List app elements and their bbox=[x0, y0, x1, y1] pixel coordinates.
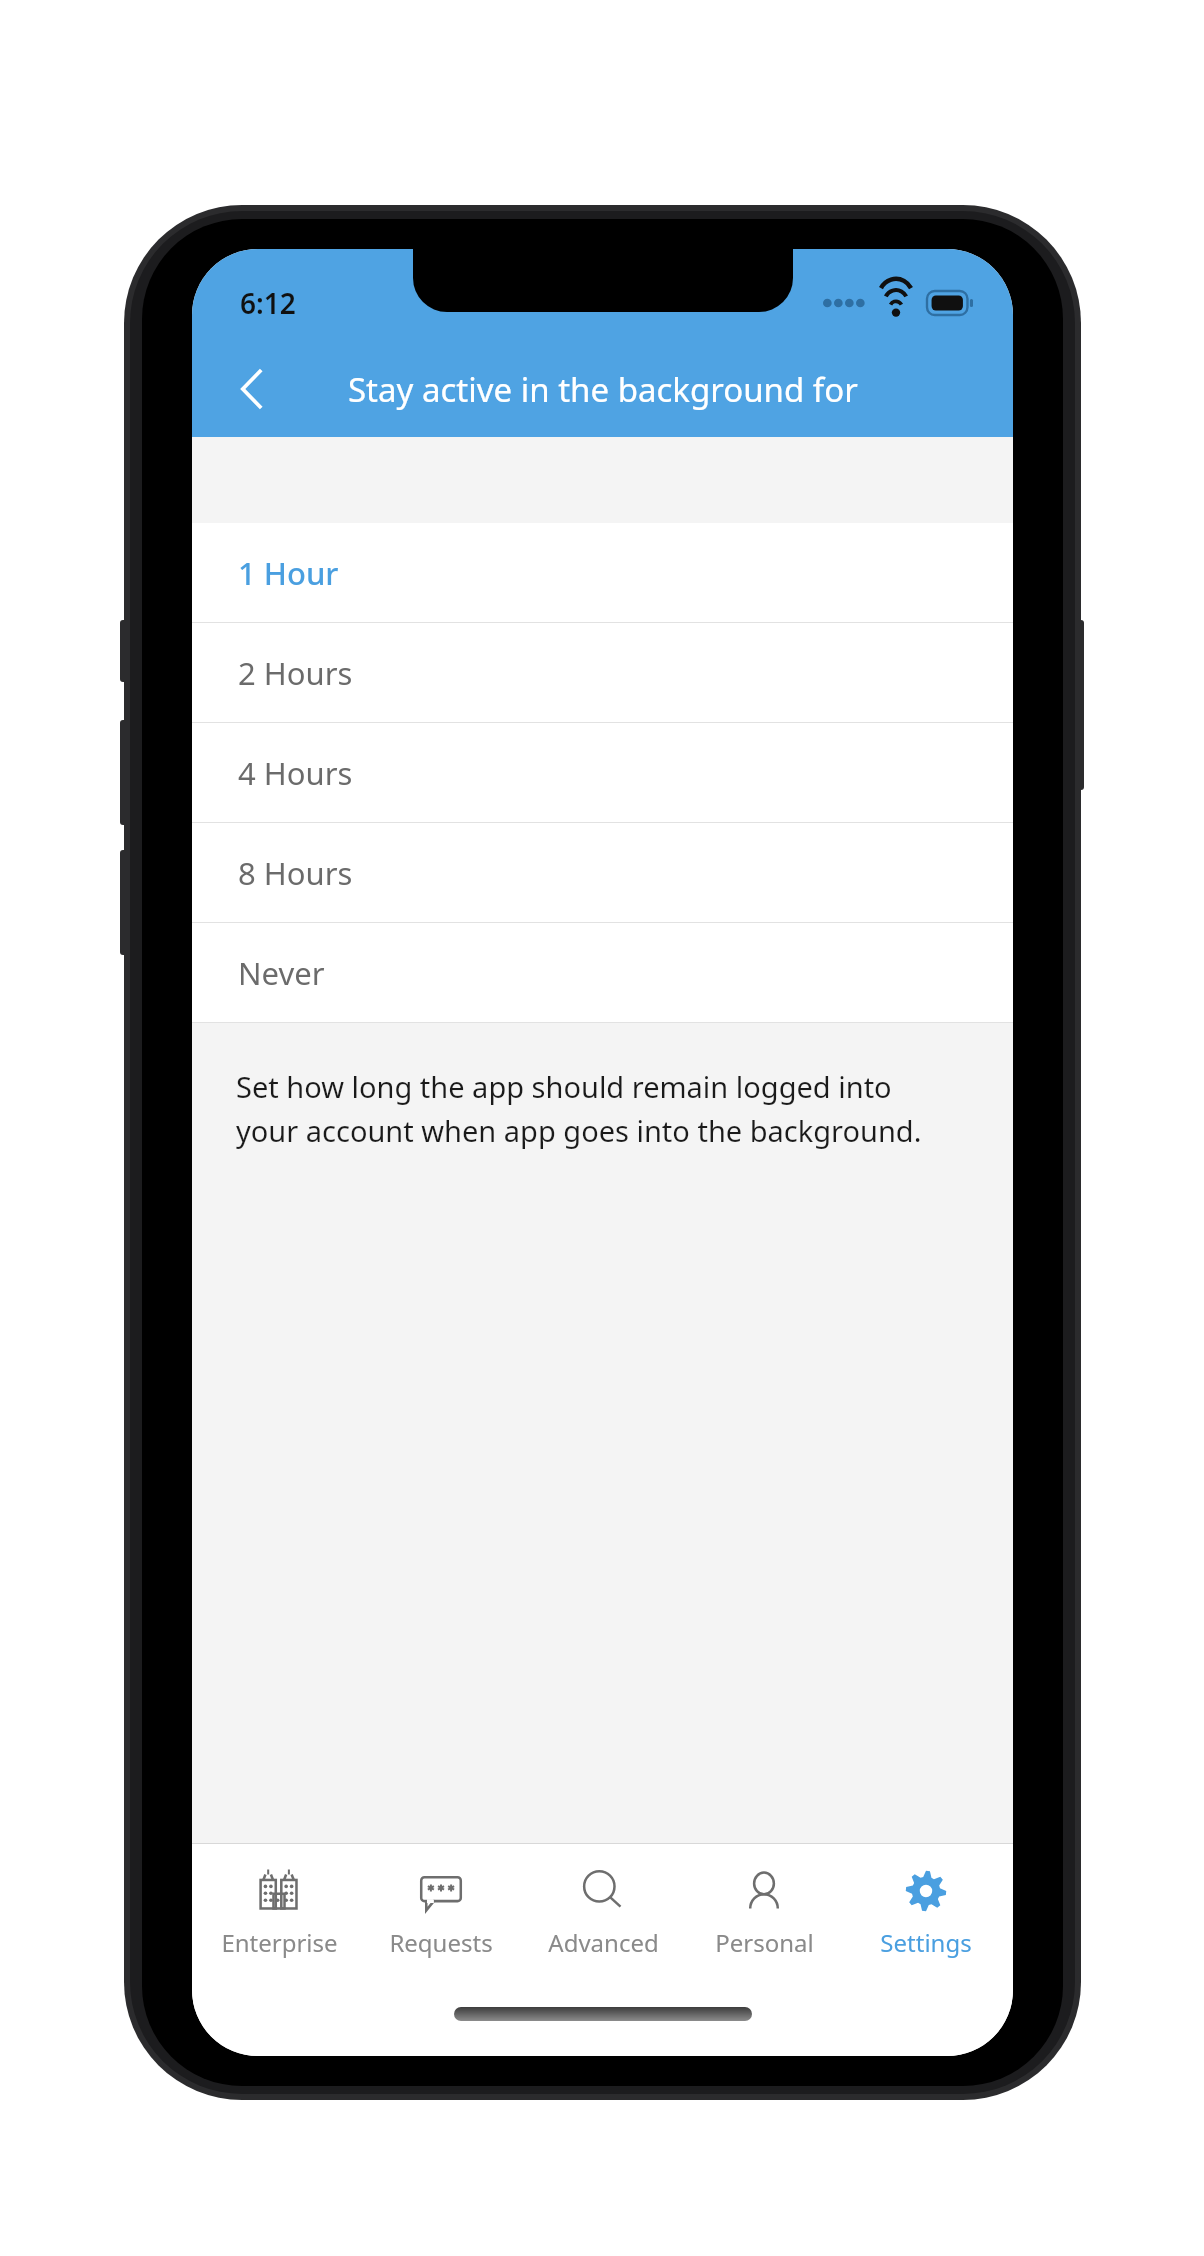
button[interactable]: 1 Hour bbox=[192, 523, 1013, 622]
button[interactable]: Requests bbox=[366, 1862, 516, 1965]
staticText: 2 Hours bbox=[238, 652, 353, 694]
staticText: Settings bbox=[880, 1926, 972, 1959]
button[interactable]: 4 Hours bbox=[192, 723, 1013, 822]
staticText: 8 Hours bbox=[238, 852, 353, 894]
button[interactable]: Personal bbox=[689, 1862, 839, 1965]
staticText: 6:12 bbox=[240, 284, 296, 322]
button[interactable]: 2 Hours bbox=[192, 623, 1013, 722]
button[interactable]: Enterprise bbox=[204, 1862, 354, 1965]
button[interactable]: Advanced bbox=[528, 1862, 678, 1965]
button[interactable]: Back bbox=[220, 357, 284, 421]
staticText: Never bbox=[238, 952, 325, 994]
button[interactable]: Settings bbox=[851, 1862, 1001, 1965]
staticText: Personal bbox=[715, 1926, 814, 1959]
staticText: Advanced bbox=[548, 1926, 659, 1959]
staticText: 1 Hour bbox=[238, 552, 339, 594]
staticText: Stay active in the background for bbox=[348, 367, 858, 412]
staticText: Set how long the app should remain logge… bbox=[236, 1067, 961, 1150]
staticText: Enterprise bbox=[221, 1926, 338, 1959]
staticText: Requests bbox=[389, 1926, 493, 1959]
button[interactable]: Never bbox=[192, 923, 1013, 1022]
staticText: 4 Hours bbox=[238, 752, 353, 794]
button[interactable]: 8 Hours bbox=[192, 823, 1013, 922]
